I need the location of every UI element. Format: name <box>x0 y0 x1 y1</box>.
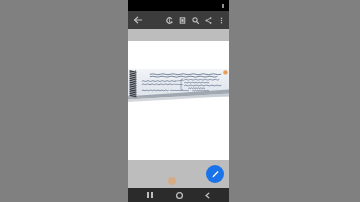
button[interactable]: Back <box>200 188 214 202</box>
button[interactable]: Search <box>189 14 202 27</box>
button[interactable]: More options <box>215 14 227 26</box>
button[interactable]: Recent apps <box>143 188 157 202</box>
button[interactable]: Share <box>202 14 215 27</box>
button[interactable]: Edit <box>206 165 224 183</box>
button[interactable]: Back <box>131 13 145 27</box>
button[interactable]: Crop <box>176 14 189 27</box>
button[interactable]: Home <box>172 188 186 202</box>
button[interactable]: Rotate <box>163 14 176 27</box>
